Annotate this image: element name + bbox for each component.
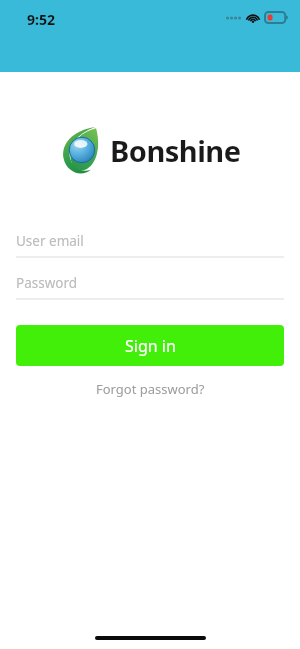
staticText: Forgot password?: [96, 380, 205, 398]
button[interactable]: Forgot password?: [84, 377, 217, 401]
staticText: Password: [16, 274, 78, 292]
button[interactable]: Password: [16, 272, 284, 300]
staticText: Bonshine: [110, 131, 241, 170]
staticText: Sign in: [125, 335, 176, 357]
button[interactable]: User email: [16, 230, 284, 258]
staticText: 9:52: [27, 10, 55, 29]
button[interactable]: Sign in: [16, 325, 284, 366]
staticText: User email: [16, 232, 84, 250]
